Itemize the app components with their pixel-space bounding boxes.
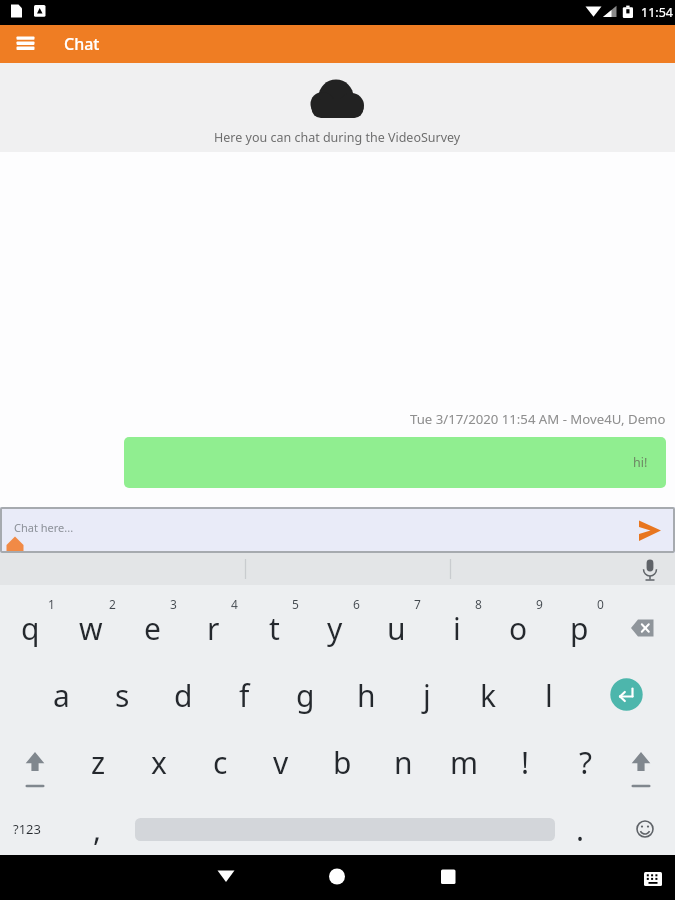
button[interactable] bbox=[625, 553, 675, 585]
button[interactable]: m bbox=[436, 734, 492, 790]
button[interactable]: y bbox=[307, 600, 363, 656]
button[interactable]: t bbox=[246, 600, 302, 656]
button[interactable]: c bbox=[192, 734, 248, 790]
staticText: i bbox=[453, 608, 461, 649]
staticText: hi! bbox=[633, 454, 648, 471]
button[interactable]: v bbox=[253, 734, 309, 790]
button[interactable]: o bbox=[490, 600, 546, 656]
button[interactable] bbox=[206, 861, 246, 893]
button[interactable]: h bbox=[338, 667, 394, 723]
button[interactable]: p bbox=[551, 600, 607, 656]
button[interactable] bbox=[15, 740, 57, 784]
staticText: r bbox=[207, 608, 220, 649]
staticText: z bbox=[91, 742, 106, 783]
button[interactable]: x bbox=[131, 734, 187, 790]
staticText: d bbox=[174, 675, 193, 716]
button[interactable]: k bbox=[460, 667, 516, 723]
staticText: , bbox=[93, 809, 102, 850]
staticText: 1 bbox=[48, 596, 55, 612]
button[interactable]: i bbox=[429, 600, 485, 656]
staticText: b bbox=[333, 742, 352, 783]
staticText: 8 bbox=[475, 596, 482, 612]
staticText: n bbox=[394, 742, 413, 783]
button[interactable]: n bbox=[375, 734, 431, 790]
staticText: 4 bbox=[231, 596, 238, 612]
button[interactable] bbox=[620, 740, 662, 784]
button[interactable]: w bbox=[63, 600, 119, 656]
staticText: . bbox=[576, 809, 585, 850]
button[interactable] bbox=[135, 814, 555, 844]
staticText: h bbox=[357, 675, 376, 716]
staticText: 11:54 bbox=[641, 4, 673, 21]
staticText: c bbox=[213, 742, 228, 783]
staticText: ? bbox=[579, 742, 593, 783]
staticText: t bbox=[269, 608, 280, 649]
staticText: e bbox=[144, 608, 161, 649]
button[interactable] bbox=[631, 507, 675, 553]
staticText: o bbox=[509, 608, 528, 649]
staticText: 3 bbox=[170, 596, 177, 612]
button[interactable]: e bbox=[124, 600, 180, 656]
button[interactable]: , bbox=[69, 801, 125, 857]
button[interactable]: b bbox=[314, 734, 370, 790]
staticText: 9 bbox=[536, 596, 543, 612]
staticText: u bbox=[387, 608, 406, 649]
staticText: Here you can chat during the VideoSurvey bbox=[214, 129, 461, 146]
staticText: l bbox=[545, 675, 553, 716]
staticText: y bbox=[327, 608, 343, 649]
button[interactable]: a bbox=[33, 667, 89, 723]
button[interactable] bbox=[12, 31, 40, 57]
staticText: w bbox=[79, 608, 103, 649]
staticText: x bbox=[151, 742, 167, 783]
button[interactable] bbox=[428, 857, 468, 897]
button[interactable] bbox=[610, 677, 644, 711]
staticText: g bbox=[296, 675, 315, 716]
button[interactable]: d bbox=[155, 667, 211, 723]
button[interactable]: ?123 bbox=[1, 801, 53, 857]
button[interactable]: Chat here... bbox=[0, 507, 675, 553]
button[interactable]: . bbox=[552, 801, 608, 857]
staticText: s bbox=[115, 675, 130, 716]
staticText: ?123 bbox=[13, 820, 41, 838]
staticText: m bbox=[450, 742, 479, 783]
staticText: k bbox=[480, 675, 497, 716]
staticText: j bbox=[423, 675, 431, 716]
staticText: 0 bbox=[597, 596, 604, 612]
staticText: Chat bbox=[64, 33, 100, 55]
staticText: Tue 3/17/2020 11:54 AM - Move4U, Demo bbox=[410, 410, 666, 428]
button[interactable]: q bbox=[2, 600, 58, 656]
button[interactable]: j bbox=[399, 667, 455, 723]
staticText: 6 bbox=[353, 596, 360, 612]
button[interactable]: r bbox=[185, 600, 241, 656]
staticText: 2 bbox=[109, 596, 116, 612]
button[interactable]: z bbox=[70, 734, 126, 790]
button[interactable] bbox=[625, 813, 665, 845]
button[interactable]: ? bbox=[558, 734, 614, 790]
button[interactable] bbox=[317, 857, 357, 897]
button[interactable]: f bbox=[216, 667, 272, 723]
staticText: p bbox=[570, 608, 589, 649]
staticText: q bbox=[21, 608, 40, 649]
staticText: v bbox=[273, 742, 289, 783]
staticText: a bbox=[53, 675, 70, 716]
button[interactable] bbox=[636, 865, 670, 893]
button[interactable]: hi! bbox=[124, 437, 666, 488]
staticText: Chat here... bbox=[14, 520, 74, 535]
button[interactable]: s bbox=[94, 667, 150, 723]
staticText: 7 bbox=[414, 596, 421, 612]
button[interactable] bbox=[622, 611, 662, 645]
staticText: 5 bbox=[292, 596, 299, 612]
button[interactable]: g bbox=[277, 667, 333, 723]
staticText: ! bbox=[521, 742, 530, 783]
button[interactable]: ! bbox=[497, 734, 553, 790]
button[interactable]: l bbox=[521, 667, 577, 723]
staticText: f bbox=[239, 675, 250, 716]
button[interactable]: u bbox=[368, 600, 424, 656]
